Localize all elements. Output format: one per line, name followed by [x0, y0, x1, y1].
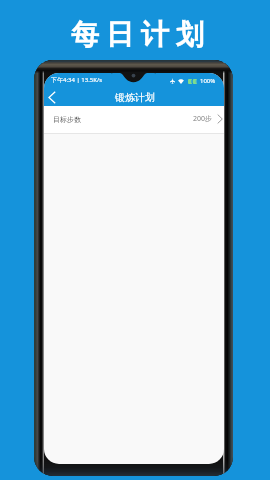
staticText: 下午4:34 | 13.5K/s [51, 76, 103, 84]
staticText: 锻炼计划 [115, 91, 155, 104]
staticText: 200步 [193, 114, 213, 124]
button[interactable]: 目标步数 [44, 106, 224, 134]
staticText: 每日计划 [6, 17, 270, 52]
staticText: 目标步数 [53, 115, 81, 124]
button[interactable]: Back [44, 88, 61, 106]
staticText: 100% [200, 77, 216, 85]
